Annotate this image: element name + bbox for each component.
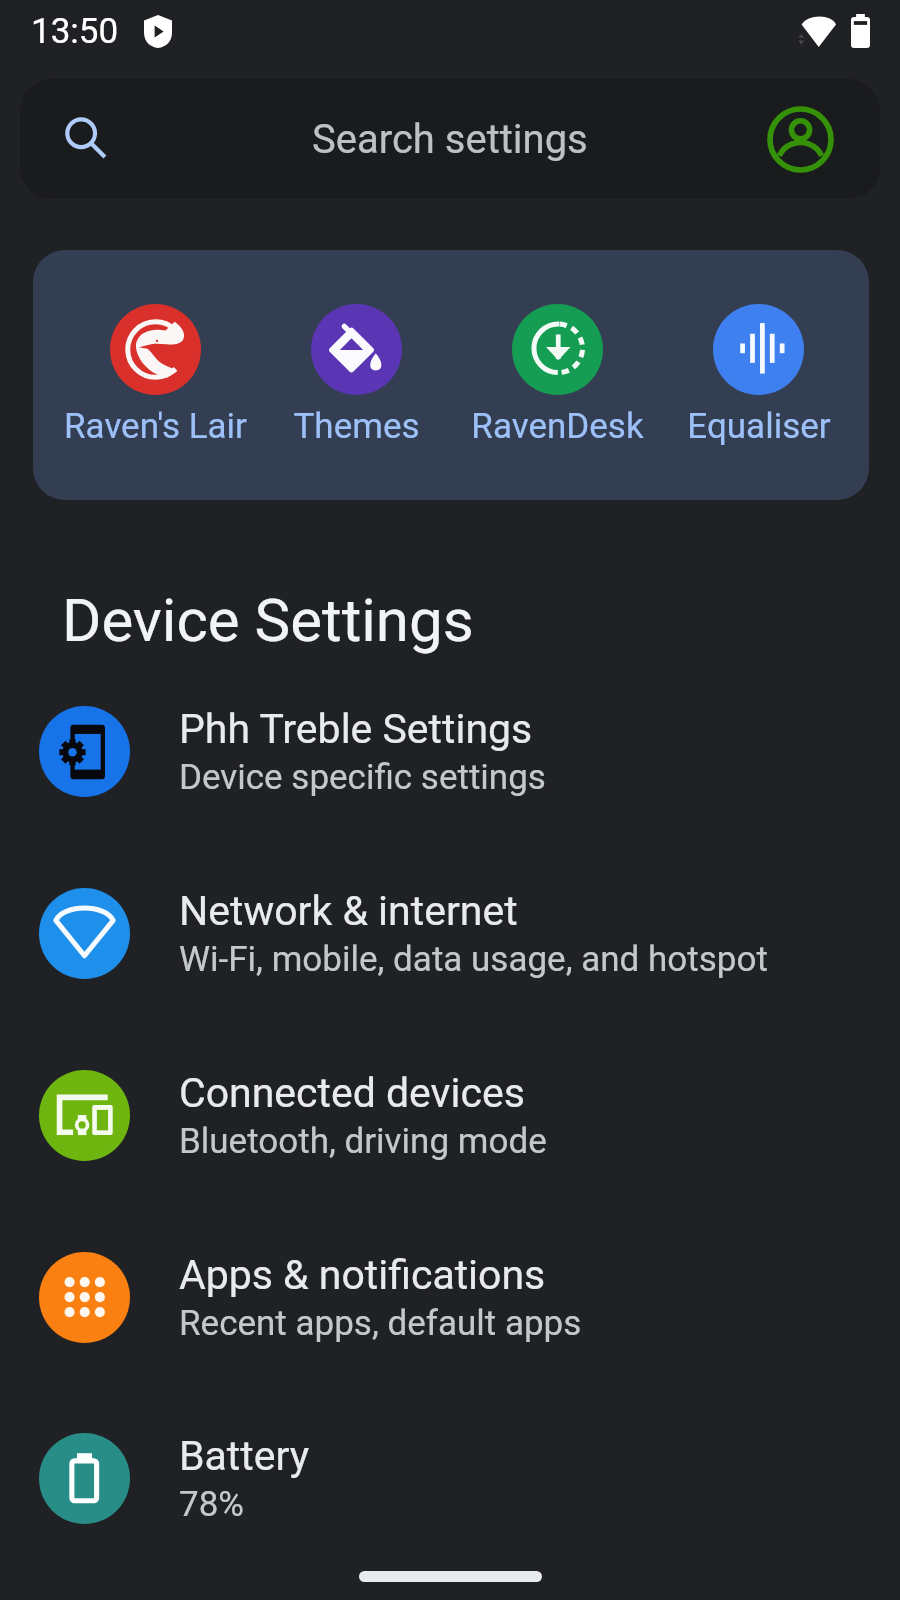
button[interactable]: Account: [767, 106, 834, 173]
staticText: Connected devices: [179, 1069, 525, 1117]
staticText: Themes: [293, 406, 420, 447]
staticText: Battery: [179, 1432, 310, 1480]
button[interactable]: Search settings: [20, 79, 880, 199]
staticText: Network & internet: [179, 887, 518, 935]
staticText: Bluetooth, driving mode: [179, 1121, 547, 1162]
staticText: RavenDesk: [471, 406, 644, 447]
button[interactable]: Raven's Lair: [55, 296, 256, 455]
staticText: Phh Treble Settings: [179, 705, 533, 753]
staticText: Device specific settings: [179, 757, 546, 798]
staticText: Raven's Lair: [64, 406, 247, 447]
staticText: Apps & notifications: [179, 1251, 546, 1299]
staticText: Recent apps, default apps: [179, 1303, 582, 1344]
staticText: Equaliser: [687, 406, 831, 447]
staticText: 13:50: [31, 11, 119, 52]
staticText: Search settings: [312, 116, 588, 163]
button[interactable]: Network & internet: [0, 842, 900, 1024]
staticText: Device Settings: [62, 585, 474, 655]
button[interactable]: Battery: [0, 1387, 900, 1569]
button[interactable]: Themes: [256, 296, 457, 455]
button[interactable]: Apps & notifications: [0, 1206, 900, 1388]
button[interactable]: Connected devices: [0, 1024, 900, 1206]
button[interactable]: RavenDesk: [457, 296, 658, 455]
button[interactable]: Equaliser: [658, 296, 859, 455]
staticText: 78%: [179, 1484, 244, 1525]
staticText: Wi-Fi, mobile, data usage, and hotspot: [179, 939, 768, 980]
button[interactable]: Phh Treble Settings: [0, 660, 900, 842]
